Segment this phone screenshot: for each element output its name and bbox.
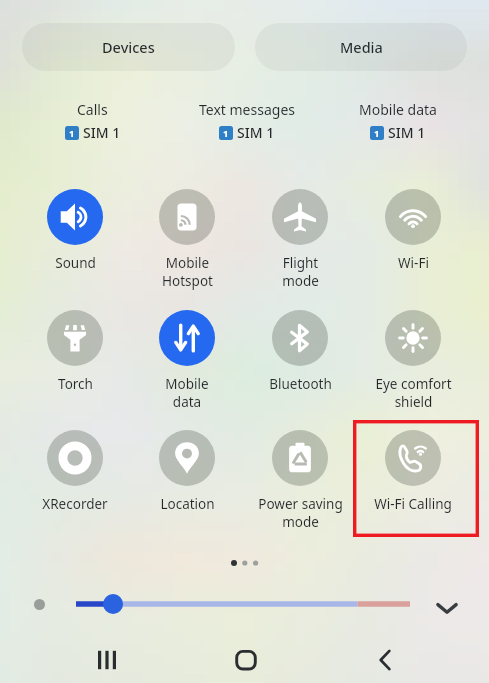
button[interactable]: Bluetooth: [244, 310, 356, 416]
staticText: 1: [374, 127, 380, 140]
staticText: Media: [340, 37, 383, 57]
button[interactable]: Media: [255, 23, 467, 71]
staticText: Eye comfort shield: [375, 375, 452, 411]
button[interactable]: Back: [348, 639, 421, 681]
staticText: XRecorder: [42, 495, 108, 513]
button[interactable]: Expand quick settings: [430, 595, 464, 621]
button[interactable]: Power saving mode: [244, 430, 356, 536]
staticText: Mobile data: [359, 100, 437, 119]
button[interactable]: Wi-Fi: [357, 189, 469, 295]
staticText: Location: [160, 495, 215, 513]
staticText: Mobile Hotspot: [162, 254, 213, 290]
button[interactable]: Home: [209, 639, 282, 681]
staticText: Power saving mode: [258, 495, 343, 531]
button[interactable]: Mobile data: [317, 100, 478, 142]
staticText: Flight mode: [282, 254, 319, 290]
staticText: Wi-Fi Calling: [374, 495, 452, 513]
button[interactable]: Mobile data: [131, 310, 243, 416]
button[interactable]: Eye comfort shield: [357, 310, 469, 416]
staticText: Torch: [58, 375, 93, 393]
staticText: Calls: [77, 100, 108, 119]
button[interactable]: Flight mode: [244, 189, 356, 295]
button[interactable]: Auto brightness: [28, 593, 50, 615]
button[interactable]: Mobile Hotspot: [131, 189, 243, 295]
staticText: 1: [223, 127, 229, 140]
button[interactable]: Torch: [19, 310, 131, 416]
button[interactable]: Calls: [12, 100, 173, 142]
button[interactable]: Wi-Fi Calling: [357, 430, 469, 536]
staticText: Devices: [102, 37, 155, 57]
button[interactable]: Recent apps: [70, 639, 143, 681]
staticText: Bluetooth: [269, 375, 332, 393]
button[interactable]: Location: [131, 430, 243, 536]
staticText: Text messages: [199, 100, 295, 119]
staticText: Wi-Fi: [398, 254, 429, 272]
staticText: SIM 1: [388, 123, 426, 142]
button[interactable]: [76, 596, 410, 612]
staticText: Sound: [55, 254, 96, 272]
staticText: 1: [69, 127, 75, 140]
staticText: Mobile data: [165, 375, 209, 411]
button[interactable]: Sound: [19, 189, 131, 295]
button[interactable]: Text messages: [166, 100, 327, 142]
staticText: SIM 1: [83, 123, 121, 142]
button[interactable]: XRecorder: [19, 430, 131, 536]
button[interactable]: Devices: [22, 23, 235, 71]
staticText: SIM 1: [237, 123, 275, 142]
